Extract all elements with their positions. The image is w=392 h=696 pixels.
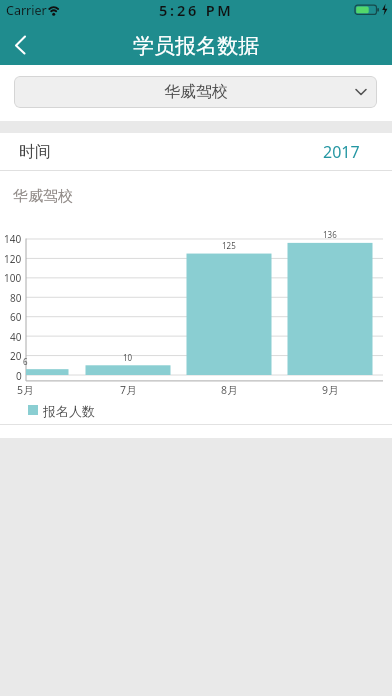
button[interactable] <box>0 22 44 65</box>
staticText: 5月 <box>17 383 34 396</box>
staticText: 140 <box>4 232 22 245</box>
staticText: 0 <box>16 369 22 382</box>
staticText: 2017 <box>323 141 360 163</box>
staticText: 学员报名数据 <box>133 33 259 59</box>
staticText: Carrier <box>6 2 47 18</box>
button[interactable]: 时间 <box>0 133 392 170</box>
staticText: 8月 <box>221 383 238 396</box>
staticText: 120 <box>4 252 22 265</box>
staticText: 华威驾校 <box>164 82 228 102</box>
staticText: 9月 <box>322 383 339 396</box>
staticText: 华威驾校 <box>13 187 73 204</box>
staticText: 6 <box>23 356 28 367</box>
staticText: 报名人数 <box>43 403 95 418</box>
staticText: 20 <box>10 349 22 362</box>
staticText: 80 <box>10 291 22 304</box>
staticText: 7月 <box>120 383 137 396</box>
staticText: 100 <box>4 271 22 284</box>
staticText: 40 <box>10 330 22 343</box>
button[interactable]: 华威驾校 <box>14 76 377 108</box>
staticText: 136 <box>323 229 337 240</box>
staticText: 时间 <box>19 142 51 162</box>
staticText: 125 <box>222 240 236 251</box>
staticText: 10 <box>123 352 133 363</box>
staticText: 5:26 PM <box>159 0 234 17</box>
staticText: 60 <box>10 310 22 323</box>
